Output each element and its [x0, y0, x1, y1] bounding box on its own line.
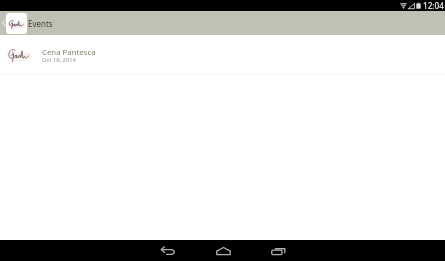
staticText: Events [28, 18, 53, 29]
button[interactable]: Navigate up [0, 11, 27, 35]
staticText: Oct 18, 2014 [42, 56, 76, 64]
staticText: 12:04 [423, 0, 444, 11]
button[interactable]: Home [203, 240, 243, 261]
button[interactable]: Recent apps [258, 240, 298, 261]
button[interactable]: Back [148, 240, 188, 261]
staticText: Cena Pantesca [42, 47, 96, 58]
button[interactable]: Cena Pantesca [0, 35, 445, 75]
